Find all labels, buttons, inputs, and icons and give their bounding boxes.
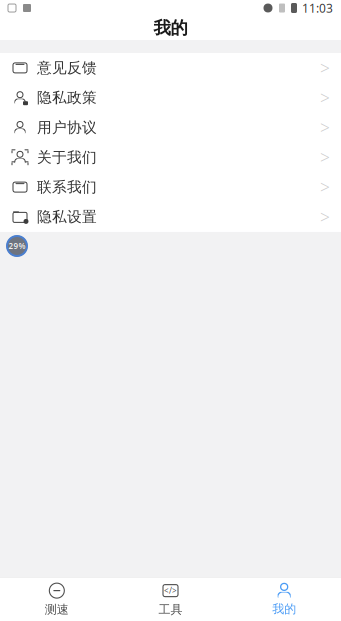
staticText: 我的 [153, 17, 187, 39]
staticText: > [320, 86, 330, 109]
staticText: 关于我们 [37, 148, 97, 166]
button[interactable]: 关于我们 [0, 142, 341, 172]
staticText: 我的 [272, 602, 296, 616]
button[interactable]: 联系我们 [0, 172, 341, 202]
staticText: 11:03 [302, 0, 333, 16]
button[interactable]: 用户协议 [0, 113, 341, 142]
staticText: 联系我们 [37, 178, 97, 196]
staticText: 隐私政策 [37, 89, 97, 107]
staticText: 29% [8, 241, 25, 251]
staticText: > [320, 146, 330, 169]
staticText: > [320, 116, 330, 139]
staticText: > [320, 56, 330, 79]
button[interactable]: 我的 [227, 578, 341, 621]
button[interactable]: 隐私政策 [0, 83, 341, 113]
staticText: 用户协议 [37, 118, 97, 136]
button[interactable]: </> [114, 578, 227, 621]
staticText: </> [164, 585, 177, 596]
staticText: 测速 [45, 602, 69, 617]
staticText: > [320, 176, 330, 199]
button[interactable]: Progress 29 percent [5, 234, 29, 258]
button[interactable]: 意见反馈 [0, 53, 341, 83]
staticText: 隐私设置 [37, 208, 97, 226]
staticText: > [320, 205, 330, 228]
staticText: 意见反馈 [37, 59, 97, 77]
button[interactable]: 测速 [0, 578, 114, 621]
staticText: 工具 [158, 602, 182, 617]
button[interactable]: 隐私设置 [0, 202, 341, 232]
